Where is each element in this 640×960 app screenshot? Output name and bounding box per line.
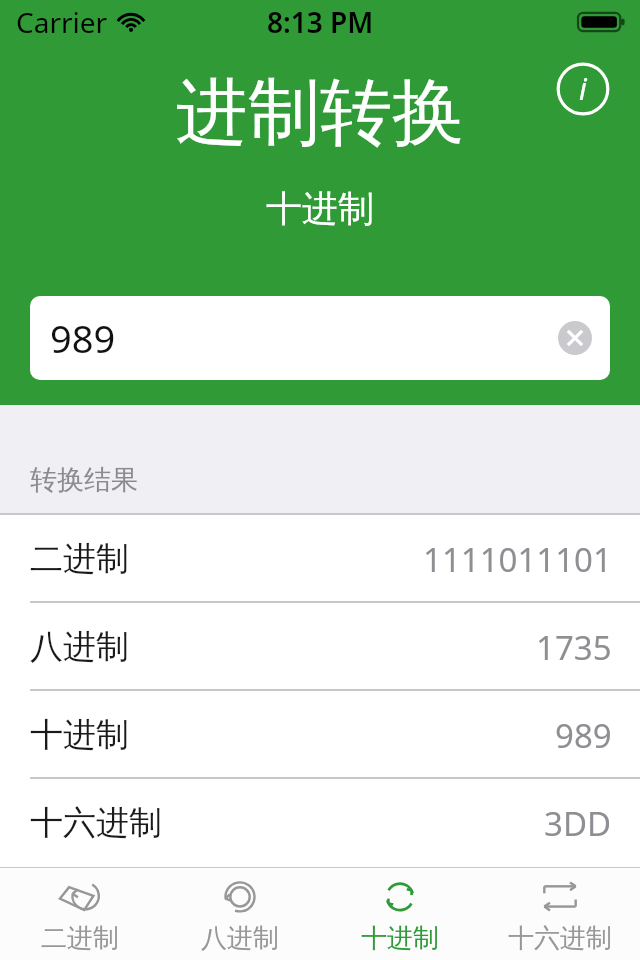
button[interactable]: 二进制: [0, 515, 640, 603]
button[interactable]: 十六进制: [480, 868, 640, 960]
staticText: 十进制: [30, 714, 129, 756]
staticText: 十六进制: [30, 802, 162, 844]
button[interactable]: 989: [30, 296, 610, 380]
staticText: 989: [555, 713, 612, 758]
staticText: 十进制: [361, 922, 439, 955]
button[interactable]: 十六进制: [0, 779, 640, 867]
staticText: 八进制: [201, 922, 279, 955]
staticText: 转换结果: [30, 463, 138, 497]
staticText: 八进制: [30, 626, 129, 668]
staticText: 二进制: [30, 538, 129, 580]
staticText: i: [579, 68, 587, 109]
button[interactable]: Clear text: [558, 321, 592, 355]
staticText: 3DD: [544, 801, 612, 846]
staticText: 8:13 PM: [267, 3, 374, 41]
staticText: Carrier: [16, 3, 108, 41]
staticText: 进制转换: [176, 68, 464, 159]
staticText: 989: [50, 312, 116, 364]
staticText: 十进制: [266, 186, 374, 231]
button[interactable]: 十进制: [320, 868, 480, 960]
staticText: 1735: [536, 625, 612, 670]
staticText: 二进制: [41, 922, 119, 955]
button[interactable]: Info: [552, 58, 614, 120]
staticText: 1111011101: [423, 537, 612, 582]
button[interactable]: 八进制: [160, 868, 320, 960]
button[interactable]: 二进制: [0, 868, 160, 960]
button[interactable]: 八进制: [0, 603, 640, 691]
button[interactable]: 十进制: [0, 691, 640, 779]
staticText: 十六进制: [508, 922, 612, 955]
